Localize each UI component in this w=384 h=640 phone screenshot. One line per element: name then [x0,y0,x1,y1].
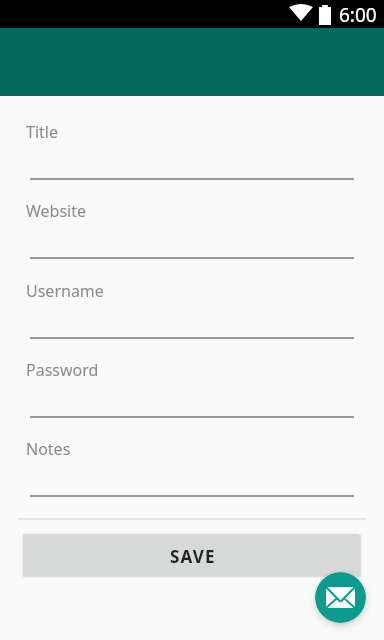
staticText: 6:00 [339,2,377,28]
button[interactable]: SAVE [23,534,360,576]
staticText: Website [26,200,87,222]
button[interactable]: Website [26,200,354,252]
staticText: Username [26,280,104,302]
staticText: SAVE [170,545,216,568]
staticText: Title [26,121,58,143]
staticText: Password [26,359,99,381]
button[interactable]: Password [26,359,354,411]
staticText: Notes [26,438,71,460]
button[interactable]: Notes [26,438,354,490]
button[interactable]: Title [26,121,354,173]
button[interactable]: Send email [315,572,366,623]
button[interactable]: Username [26,280,354,332]
